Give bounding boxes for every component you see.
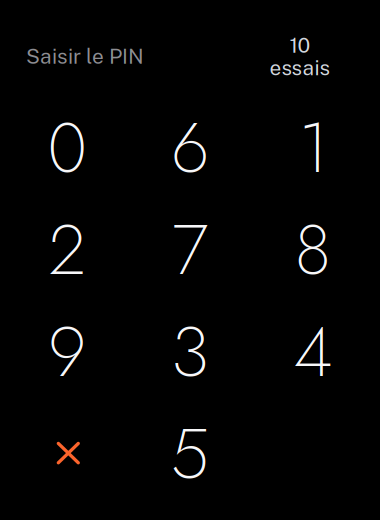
staticText: 9 — [48, 302, 86, 402]
staticText: Saisir le PIN — [26, 44, 144, 68]
staticText: 1 — [298, 98, 327, 198]
button[interactable]: 1 — [251, 97, 374, 199]
button[interactable]: 9 — [5, 301, 128, 403]
button[interactable]: 7 — [128, 199, 251, 301]
button[interactable]: 3 — [128, 301, 251, 403]
staticText: essais — [269, 55, 330, 80]
button[interactable]: 0 — [5, 97, 128, 199]
staticText: 6 — [171, 98, 209, 198]
staticText: 3 — [171, 302, 209, 402]
staticText: 7 — [172, 200, 208, 300]
button[interactable]: 4 — [251, 301, 374, 403]
staticText: 2 — [48, 200, 85, 300]
staticText: 10 — [289, 33, 310, 57]
staticText: 0 — [47, 98, 86, 198]
button[interactable]: 2 — [5, 199, 128, 301]
staticText: 8 — [294, 200, 331, 300]
staticText: 5 — [170, 404, 209, 504]
button[interactable]: 8 — [251, 199, 374, 301]
button[interactable]: 6 — [128, 97, 251, 199]
button[interactable]: 5 — [128, 403, 251, 505]
staticText: 4 — [293, 302, 332, 402]
button[interactable]: Delete — [5, 403, 128, 505]
